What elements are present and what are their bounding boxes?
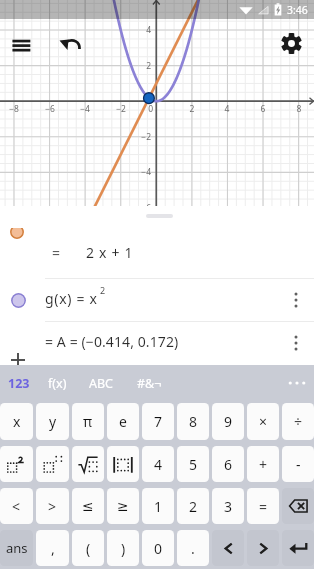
button[interactable] — [72, 446, 104, 482]
staticText: ÷ — [294, 412, 303, 431]
staticText: ABC — [89, 375, 114, 392]
staticText: f(x) — [48, 375, 67, 392]
staticText: . — [191, 539, 195, 558]
button[interactable]: = A = (−0.414, 0.172) — [0, 322, 314, 362]
staticText: 3 — [224, 497, 233, 516]
button[interactable]: 8 — [177, 403, 209, 440]
button[interactable]: ) — [107, 530, 139, 566]
staticText: 8 — [189, 412, 198, 431]
staticText: < — [12, 497, 21, 516]
button[interactable]: 2 — [177, 488, 209, 524]
button[interactable]: > — [36, 488, 69, 524]
button[interactable]: × — [247, 403, 279, 440]
button[interactable]: 0 — [142, 530, 174, 566]
staticText: 2 — [130, 60, 151, 72]
button[interactable]: ≥ — [107, 488, 139, 524]
staticText: ( — [86, 539, 91, 558]
staticText: 0 — [132, 103, 153, 115]
button[interactable]: = — [247, 488, 279, 524]
button[interactable]: 6 — [212, 446, 244, 482]
button[interactable]: Undo — [57, 33, 82, 58]
button[interactable]: 3 — [212, 488, 244, 524]
button[interactable]: 7 — [142, 403, 174, 440]
staticText: π — [83, 412, 93, 431]
button[interactable]: Menu — [8, 33, 34, 59]
staticText: 2 — [189, 497, 198, 516]
staticText: 6 — [251, 103, 275, 115]
staticText: 1 — [154, 497, 163, 516]
staticText: −6 — [38, 103, 62, 115]
staticText: ≥ — [117, 498, 129, 514]
staticText: e — [119, 412, 127, 431]
button[interactable]: 123 — [8, 375, 30, 392]
button[interactable]: . — [177, 530, 209, 566]
button[interactable] — [107, 446, 139, 482]
staticText: 123 — [8, 375, 30, 392]
button[interactable]: #&¬ — [137, 375, 162, 392]
button[interactable] — [212, 530, 244, 566]
staticText: = — [52, 243, 61, 262]
staticText: 0 — [154, 539, 163, 558]
staticText: #&¬ — [137, 375, 162, 392]
staticText: −4 — [73, 103, 97, 115]
button[interactable]: f(x) — [48, 375, 67, 392]
button[interactable]: < — [0, 488, 33, 524]
staticText: x — [13, 412, 21, 431]
button[interactable]: 4 — [142, 446, 174, 482]
button[interactable]: Settings — [281, 33, 302, 54]
staticText: −2 — [130, 131, 151, 143]
staticText: = A = (−0.414, 0.172) — [45, 332, 179, 351]
button[interactable]: More options — [287, 331, 305, 355]
button[interactable]: + — [247, 446, 279, 482]
staticText: × — [259, 412, 268, 431]
staticText: 5 — [189, 455, 198, 474]
staticText: 2 — [180, 103, 204, 115]
staticText: 2 — [100, 284, 106, 296]
button[interactable]: - — [282, 446, 314, 482]
button[interactable]: = — [0, 228, 314, 272]
staticText: 6 — [224, 455, 233, 474]
button[interactable] — [282, 488, 314, 524]
staticText: 4 — [130, 24, 151, 36]
staticText: 9 — [224, 412, 233, 431]
staticText: ) — [121, 539, 126, 558]
button[interactable] — [36, 446, 69, 482]
button[interactable]: More — [284, 371, 310, 395]
button[interactable]: ABC — [89, 375, 114, 392]
button[interactable]: ÷ — [282, 403, 314, 440]
button[interactable]: π — [72, 403, 104, 440]
button[interactable]: ans — [0, 530, 33, 566]
button[interactable]: x — [0, 403, 33, 440]
button[interactable]: 5 — [177, 446, 209, 482]
staticText: ≤ — [82, 498, 94, 514]
staticText: = — [259, 497, 268, 516]
button[interactable] — [0, 446, 33, 482]
staticText: −4 — [130, 166, 151, 178]
button[interactable]: y — [36, 403, 69, 440]
staticText: 7 — [154, 412, 163, 431]
button[interactable] — [282, 530, 314, 566]
button[interactable]: Add — [11, 353, 25, 365]
button[interactable]: e — [107, 403, 139, 440]
staticText: , — [51, 539, 55, 558]
button[interactable]: 9 — [212, 403, 244, 440]
staticText: 4 — [215, 103, 239, 115]
staticText: > — [48, 497, 57, 516]
button[interactable]: ≤ — [72, 488, 104, 524]
staticText: y — [49, 412, 57, 431]
staticText: −2 — [109, 103, 133, 115]
button[interactable]: More options — [287, 288, 305, 312]
staticText: 3:46 — [287, 3, 308, 17]
staticText: −8 — [2, 103, 26, 115]
button[interactable]: 1 — [142, 488, 174, 524]
staticText: 2 x + 1 — [86, 243, 134, 262]
button[interactable]: g(x) = x — [0, 279, 314, 321]
staticText: 4 — [154, 455, 163, 474]
button[interactable]: , — [36, 530, 69, 566]
staticText: 8 — [287, 103, 311, 115]
staticText: - — [296, 455, 301, 474]
button[interactable]: ( — [72, 530, 104, 566]
button[interactable] — [247, 530, 279, 566]
staticText: ans — [6, 539, 28, 557]
staticText: −6 — [130, 202, 151, 206]
